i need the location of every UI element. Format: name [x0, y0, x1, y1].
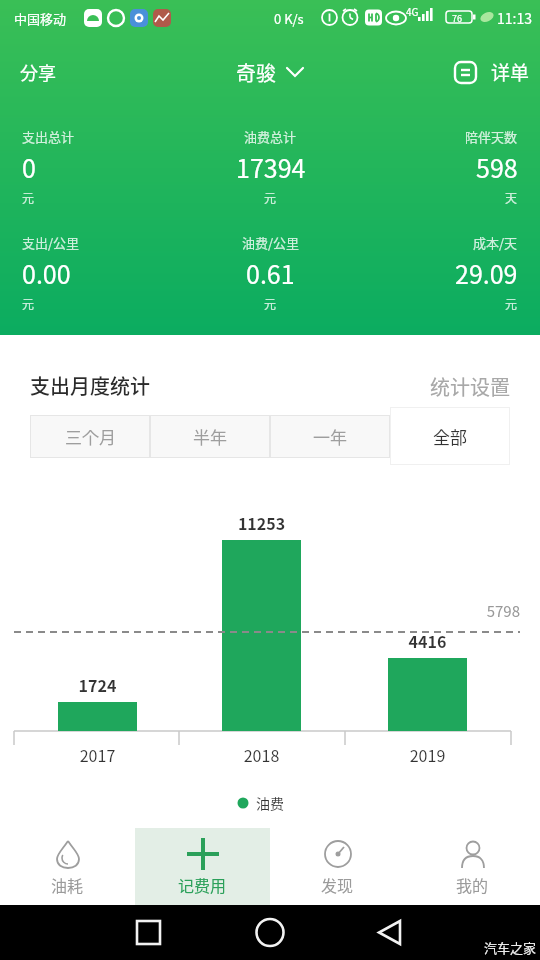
button[interactable]: 我的 — [405, 828, 540, 905]
staticText: 11:13 — [497, 8, 532, 28]
staticText: 29.09 — [455, 255, 518, 291]
staticText: 元 — [264, 295, 277, 312]
staticText: 陪伴天数 — [465, 127, 518, 146]
staticText: 分享 — [20, 59, 56, 85]
button[interactable]: 记费用 — [135, 828, 270, 905]
button[interactable]: 全部 — [390, 407, 510, 465]
staticText: 油费/公里 — [242, 233, 300, 252]
staticText: 4416 — [388, 629, 467, 652]
staticText: 发现 — [321, 873, 354, 896]
button[interactable]: 半年 — [150, 415, 270, 458]
staticText: 元 — [22, 295, 35, 312]
staticText: 11253 — [222, 511, 301, 534]
staticText: 中国移动 — [14, 9, 67, 28]
staticText: 元 — [22, 189, 35, 206]
button[interactable]: 统计设置 — [430, 372, 510, 401]
staticText: 油费 — [256, 793, 284, 813]
staticText: 支出月度统计 — [30, 371, 150, 400]
button[interactable] — [80, 905, 215, 960]
staticText: 4G — [406, 4, 419, 18]
staticText: 17394 — [236, 149, 306, 185]
staticText: 三个月 — [65, 424, 116, 449]
staticText: 奇骏 — [236, 58, 276, 87]
staticText: 支出/公里 — [22, 233, 80, 252]
staticText: 76 — [452, 12, 462, 25]
staticText: 统计设置 — [430, 372, 510, 401]
staticText: 2018 — [222, 743, 301, 766]
staticText: 元 — [264, 189, 277, 206]
staticText: 元 — [505, 295, 518, 312]
staticText: 0.61 — [246, 255, 295, 291]
staticText: 5798 — [440, 600, 520, 622]
staticText: 0 — [22, 149, 36, 185]
staticText: 天 — [505, 189, 518, 206]
staticText: 油费总计 — [244, 127, 297, 146]
staticText: 汽车之家 — [484, 938, 537, 957]
button[interactable]: 奇骏 — [236, 58, 304, 87]
button[interactable]: 发现 — [270, 828, 405, 905]
staticText: 支出总计 — [22, 127, 75, 146]
staticText: 我的 — [456, 873, 489, 896]
staticText: 598 — [476, 149, 518, 185]
staticText: 一年 — [313, 424, 347, 449]
staticText: 全部 — [433, 424, 467, 449]
staticText: 1724 — [58, 673, 137, 696]
button[interactable]: 详单 — [454, 58, 530, 86]
staticText: 半年 — [193, 424, 227, 449]
staticText: 成本/天 — [473, 233, 518, 252]
button[interactable]: 一年 — [270, 415, 390, 458]
staticText: 0.00 — [22, 255, 71, 291]
staticText: 油耗 — [51, 873, 84, 896]
button[interactable]: 三个月 — [30, 415, 150, 458]
staticText: 0 K/s — [274, 9, 304, 28]
button[interactable]: 分享 — [20, 59, 56, 85]
staticText: 记费用 — [178, 873, 227, 896]
staticText: 2017 — [58, 743, 137, 766]
staticText: 2019 — [388, 743, 467, 766]
staticText: 详单 — [491, 58, 530, 86]
button[interactable]: 油耗 — [0, 828, 135, 905]
